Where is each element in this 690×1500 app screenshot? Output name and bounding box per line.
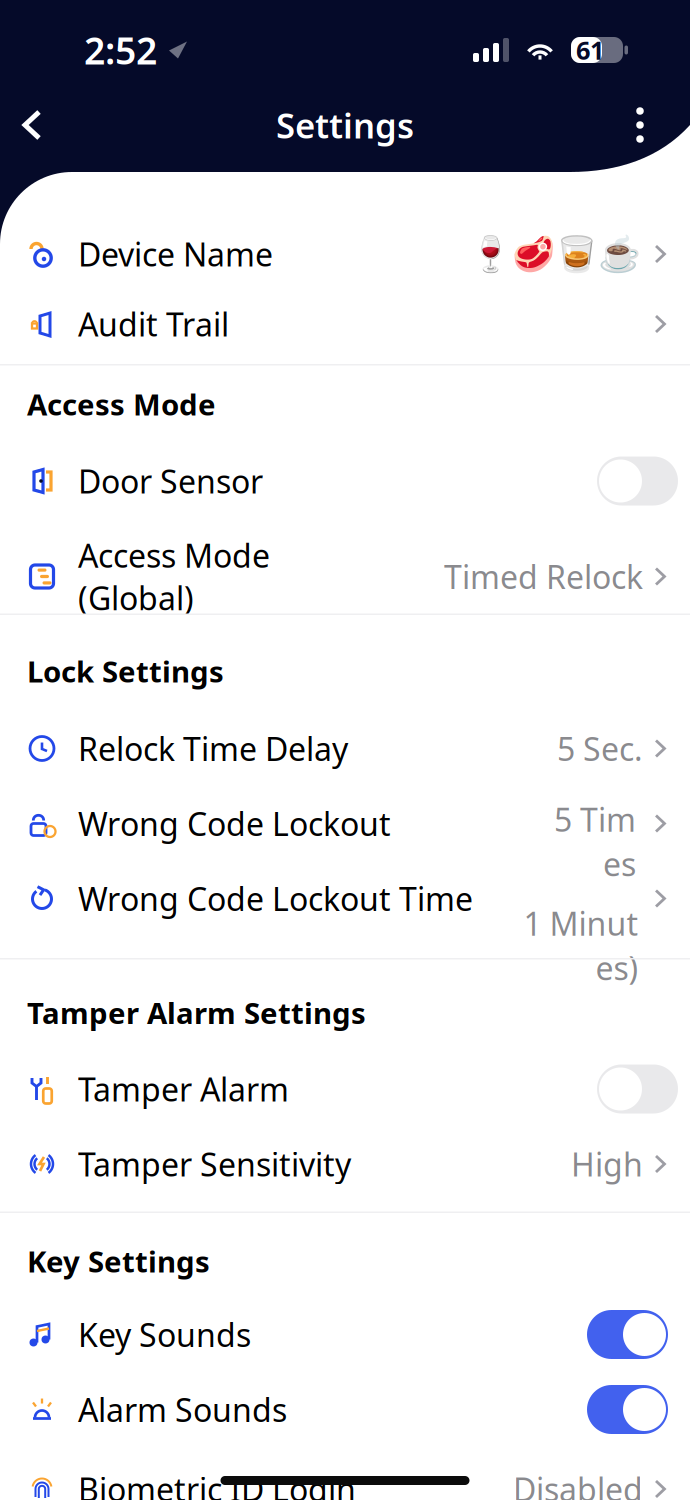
button[interactable]: Key Sounds	[0, 1297, 690, 1372]
staticText: Key Sounds	[78, 1313, 251, 1356]
staticText: Tamper Alarm	[78, 1068, 289, 1110]
staticText: Door Sensor	[78, 460, 263, 502]
button[interactable]: Device Name	[0, 219, 690, 289]
staticText: es)	[595, 946, 638, 989]
staticText: 1 Minut	[523, 902, 638, 944]
staticText: Settings	[276, 102, 414, 148]
button[interactable]: Audit Trail	[0, 289, 690, 359]
staticText: Lock Settings	[27, 651, 224, 690]
staticText: Access Mode	[27, 384, 216, 423]
button[interactable]: Access Mode (Global)	[0, 519, 690, 613]
button[interactable]: Biometric ID Login	[0, 1447, 690, 1500]
staticText: Tamper Alarm Settings	[27, 993, 366, 1032]
button[interactable]: Tamper Alarm	[0, 1051, 690, 1126]
staticText: Alarm Sounds	[78, 1388, 287, 1431]
staticText: Biometric ID Login	[78, 1468, 356, 1500]
button[interactable]: Alarm Sounds	[0, 1372, 690, 1447]
button[interactable]: Tamper Sensitivity	[0, 1126, 690, 1201]
staticText: High	[571, 1143, 643, 1185]
staticText: Wrong Code Lockout	[78, 802, 391, 845]
staticText: Access Mode (Global)	[78, 534, 270, 619]
staticText: 61	[576, 33, 604, 67]
staticText: Key Settings	[27, 1241, 210, 1280]
staticText: es	[603, 842, 636, 885]
staticText: Audit Trail	[78, 303, 229, 345]
staticText: Tamper Sensitivity	[78, 1143, 351, 1185]
button[interactable]: More options	[614, 95, 666, 155]
button[interactable]: Wrong Code Lockout	[0, 786, 690, 861]
staticText: 2:52	[84, 25, 157, 75]
staticText: 5 Sec.	[557, 727, 643, 770]
staticText: Device Name	[78, 233, 273, 275]
button[interactable]: Back	[6, 95, 58, 155]
staticText: Disabled	[513, 1468, 643, 1500]
button[interactable]: Relock Time Delay	[0, 711, 690, 786]
button[interactable]: Wrong Code Lockout Time	[0, 861, 690, 958]
staticText: 🍷🥩🥃☕	[469, 234, 641, 274]
staticText: Relock Time Delay	[78, 727, 348, 770]
staticText: 5 Tim	[554, 798, 636, 840]
button[interactable]: Door Sensor	[0, 442, 690, 519]
staticText: Wrong Code Lockout Time	[78, 877, 473, 920]
staticText: Timed Relock	[444, 555, 643, 598]
